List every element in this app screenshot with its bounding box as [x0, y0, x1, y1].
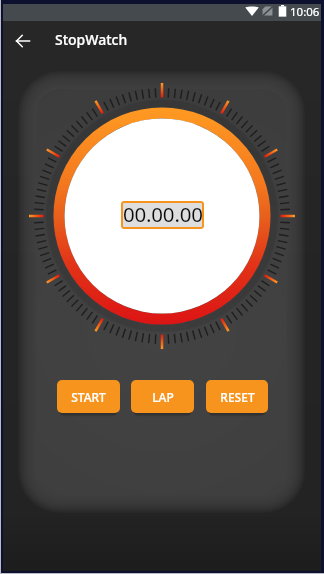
button[interactable]: Back — [9, 27, 37, 55]
button[interactable]: RESET — [206, 380, 268, 416]
staticText: 00.00.00 — [123, 201, 203, 228]
button[interactable]: LAP — [131, 380, 194, 416]
staticText: RESET — [220, 389, 255, 405]
staticText: StopWatch — [55, 30, 128, 49]
staticText: START — [71, 389, 106, 405]
staticText: 10:06 — [290, 4, 320, 20]
button[interactable]: START — [57, 380, 120, 416]
staticText: LAP — [152, 389, 174, 405]
